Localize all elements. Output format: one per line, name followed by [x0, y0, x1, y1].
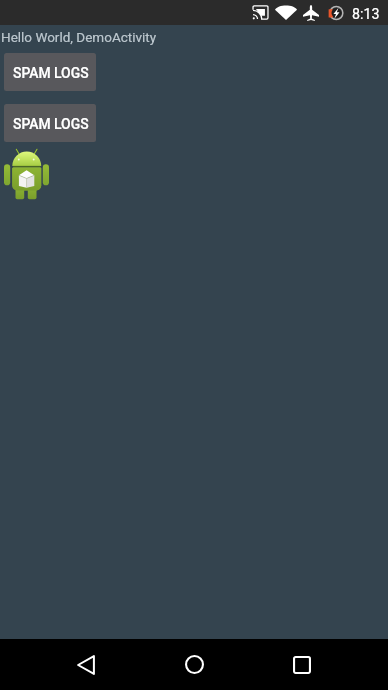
staticText: Hello World, DemoActivity: [1, 29, 157, 45]
staticText: SPAM LOGS: [13, 116, 89, 132]
button[interactable]: SPAM LOGS: [4, 104, 96, 142]
button[interactable]: Recents: [281, 639, 322, 690]
button[interactable]: SPAM LOGS: [4, 53, 96, 91]
button[interactable]: Home: [174, 639, 215, 690]
staticText: SPAM LOGS: [13, 65, 89, 81]
staticText: 8:13: [352, 6, 380, 23]
button[interactable]: Back: [65, 639, 106, 690]
